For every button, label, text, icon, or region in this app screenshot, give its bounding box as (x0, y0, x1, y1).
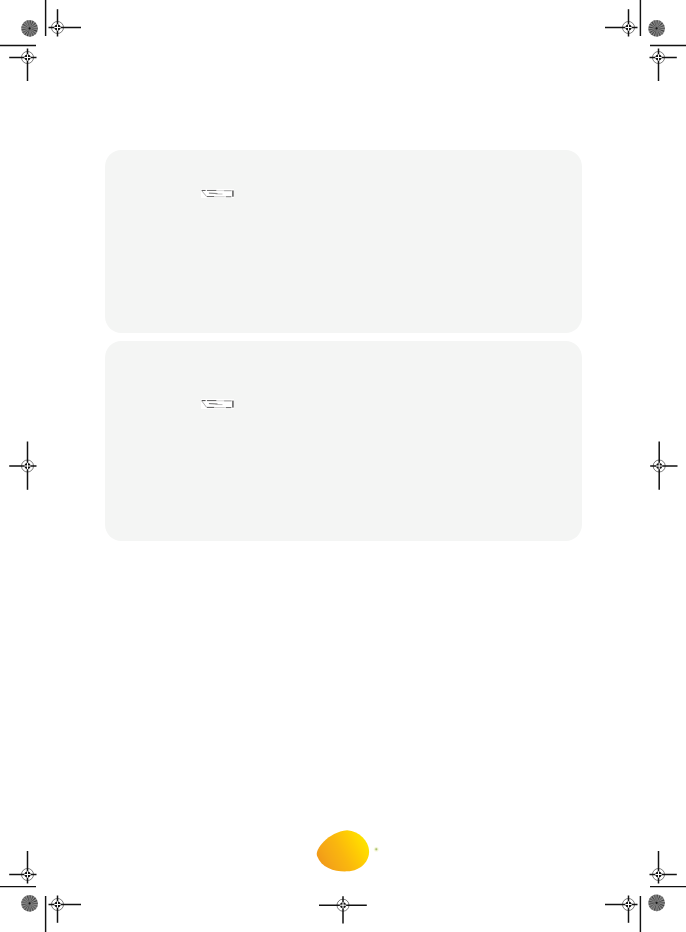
button[interactable] (105, 341, 582, 541)
button[interactable]: Artwork thumbnail (201, 399, 234, 409)
button[interactable]: Mango (316, 830, 370, 872)
button[interactable]: Artwork thumbnail (201, 189, 234, 198)
